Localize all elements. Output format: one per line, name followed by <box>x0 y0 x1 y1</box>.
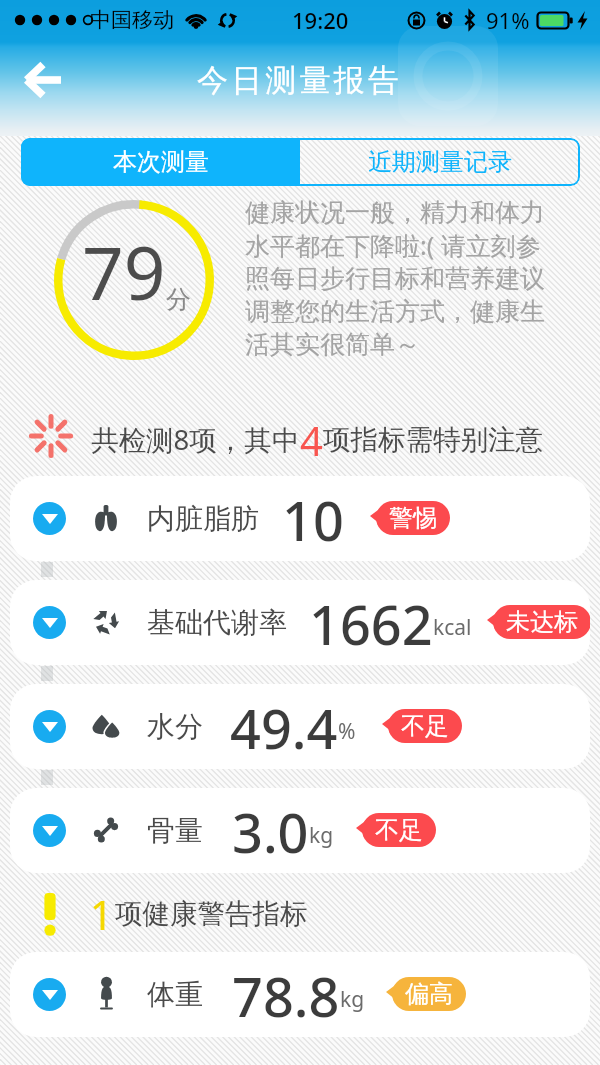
staticText: 水分 <box>147 709 203 744</box>
staticText: 体重 <box>147 977 203 1012</box>
staticText: kg <box>309 821 334 850</box>
staticText: 91% <box>486 5 530 35</box>
staticText: 78.8 <box>232 959 340 1021</box>
staticText: 项指标需特别注意 <box>323 423 543 458</box>
staticText: 内脏脂肪 <box>147 501 259 536</box>
staticText: kg <box>340 985 365 1014</box>
staticText: 偏高 <box>405 979 453 1009</box>
staticText: kcal <box>433 613 472 642</box>
staticText: 本次测量 <box>113 147 209 177</box>
staticText: 健康状况一般，精力和体力水平都在下降啦:( 请立刻参照每日步行目标和营养建议调整… <box>245 197 553 361</box>
staticText: 近期测量记录 <box>368 147 512 177</box>
button[interactable]: 骨量 <box>10 788 590 873</box>
staticText: 3.0 <box>232 795 309 857</box>
staticText: 今日测量报告 <box>197 61 403 100</box>
button[interactable]: 基础代谢率 <box>10 580 590 665</box>
staticText: 1 <box>90 887 113 939</box>
staticText: 共检测8项，其中 <box>91 421 300 459</box>
staticText: 10 <box>282 483 344 545</box>
staticText: % <box>338 717 356 746</box>
staticText: 79 <box>82 222 166 321</box>
button[interactable]: 水分 <box>10 684 590 769</box>
staticText: 分 <box>166 284 191 315</box>
staticText: 4 <box>300 413 323 465</box>
staticText: 未达标 <box>506 607 578 637</box>
button[interactable]: 本次测量 <box>21 138 300 186</box>
staticText: 警惕 <box>389 503 437 533</box>
button[interactable]: 近期测量记录 <box>300 138 580 186</box>
staticText: 49.4 <box>230 691 338 753</box>
staticText: 项健康警告指标 <box>115 897 308 932</box>
staticText: 中国移动 <box>90 7 174 33</box>
staticText: 19:20 <box>292 5 349 35</box>
button[interactable]: 体重 <box>10 952 590 1037</box>
button[interactable]: 内脏脂肪 <box>10 476 590 561</box>
staticText: 不足 <box>401 711 449 741</box>
staticText: 1662 <box>309 587 433 649</box>
staticText: 不足 <box>375 815 423 845</box>
staticText: 骨量 <box>147 813 203 848</box>
staticText: 基础代谢率 <box>147 605 287 640</box>
button[interactable]: Back <box>17 56 69 104</box>
